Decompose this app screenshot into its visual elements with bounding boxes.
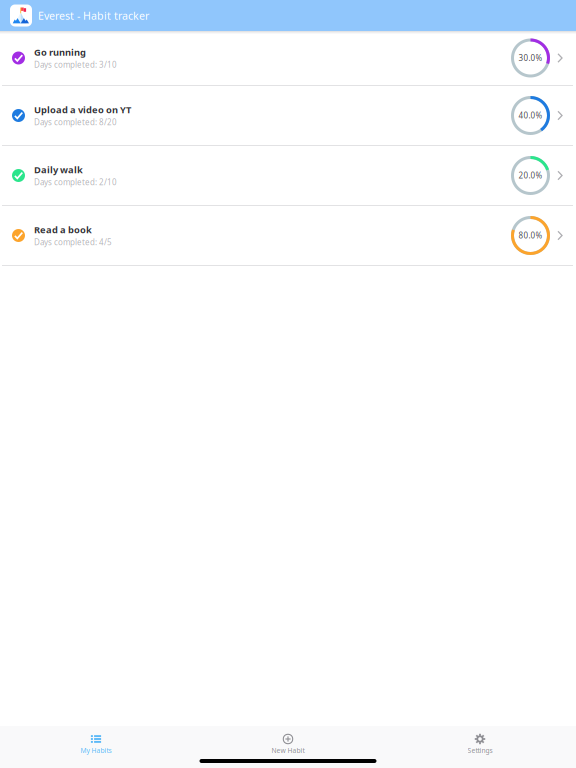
staticText: 80.0%	[518, 230, 542, 241]
staticText: Everest - Habit tracker	[38, 8, 149, 23]
staticText: 40.0%	[518, 110, 542, 121]
button[interactable]: Daily walk	[0, 146, 576, 205]
staticText: Go running	[34, 46, 86, 58]
staticText: Days completed: 3/10	[34, 59, 117, 70]
staticText: Days completed: 8/20	[34, 117, 117, 127]
staticText: New Habit	[271, 746, 304, 755]
staticText: Daily walk	[34, 163, 83, 176]
staticText: 30.0%	[518, 53, 542, 63]
staticText: Days completed: 4/5	[34, 237, 112, 247]
staticText: Settings	[467, 746, 492, 755]
button[interactable]: My Habits	[0, 726, 192, 768]
staticText: 20.0%	[518, 170, 542, 181]
staticText: Days completed: 2/10	[34, 177, 117, 187]
staticText: My Habits	[80, 746, 111, 755]
button[interactable]: New Habit	[192, 726, 384, 768]
button[interactable]: Go running	[0, 31, 576, 85]
button[interactable]: Read a book	[0, 206, 576, 265]
button[interactable]: Settings	[384, 726, 576, 768]
staticText: Read a book	[34, 223, 92, 236]
staticText: Upload a video on YT	[34, 103, 131, 116]
button[interactable]: Upload a video on YT	[0, 86, 576, 145]
